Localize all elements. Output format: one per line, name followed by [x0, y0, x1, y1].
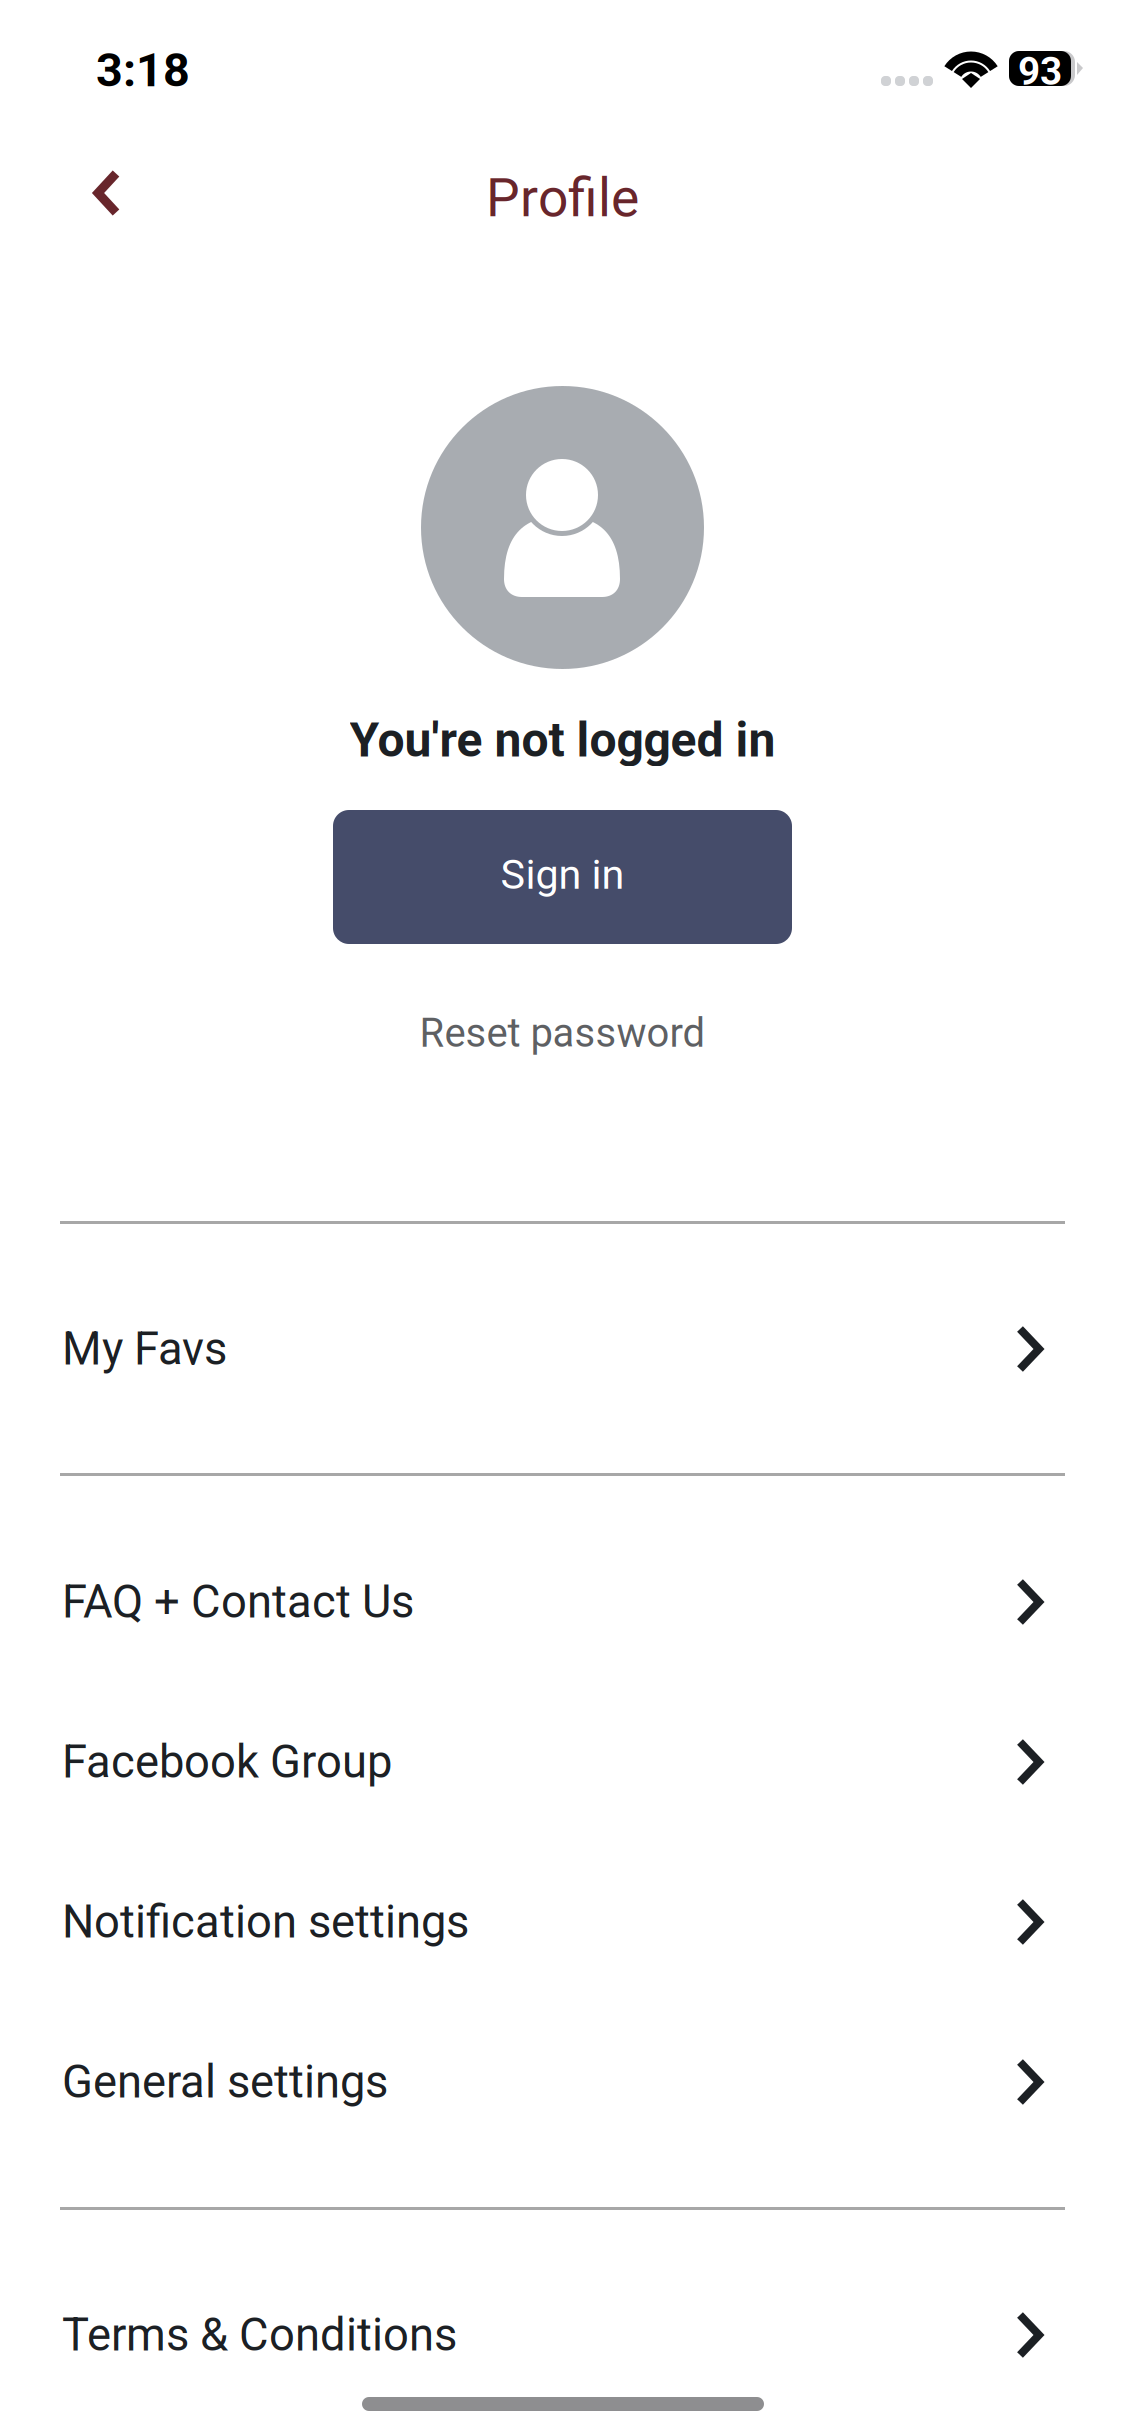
staticText: FAQ + Contact Us — [62, 1575, 414, 1628]
button[interactable]: Sign in — [333, 810, 792, 944]
button[interactable]: Terms & Conditions — [0, 2255, 1125, 2415]
staticText: Facebook Group — [62, 1735, 392, 1788]
staticText: 3:18 — [96, 43, 190, 98]
button[interactable]: FAQ + Contact Us — [0, 1522, 1125, 1682]
staticText: You're not logged in — [349, 712, 775, 768]
staticText: General settings — [62, 2055, 388, 2108]
button[interactable]: Notification settings — [0, 1842, 1125, 2002]
staticText: Profile — [486, 167, 639, 229]
staticText: My Favs — [62, 1322, 227, 1375]
button[interactable]: My Favs — [0, 1269, 1125, 1429]
staticText: Reset password — [419, 1010, 705, 1056]
staticText: Sign in — [500, 850, 624, 899]
staticText: Notification settings — [62, 1895, 469, 1948]
staticText: Terms & Conditions — [62, 2308, 457, 2361]
button[interactable]: Facebook Group — [0, 1682, 1125, 1842]
button[interactable]: General settings — [0, 2002, 1125, 2162]
button[interactable]: Back — [51, 141, 163, 245]
staticText: 93 — [1018, 49, 1062, 94]
button[interactable]: Reset password — [0, 1003, 1125, 1063]
